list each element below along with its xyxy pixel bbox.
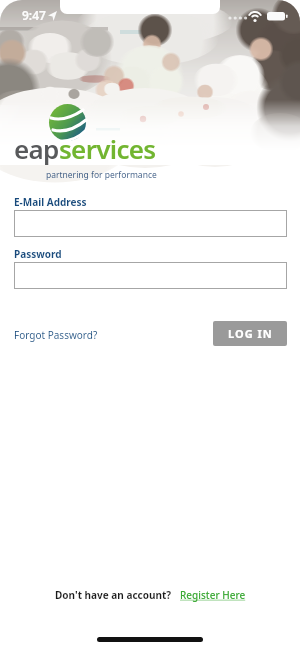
button[interactable]: Forgot Password? bbox=[14, 328, 98, 342]
staticText: partnering for performance bbox=[46, 169, 157, 181]
button[interactable] bbox=[14, 262, 287, 289]
staticText: Password bbox=[14, 247, 62, 261]
staticText: eap bbox=[14, 131, 59, 166]
staticText: services bbox=[59, 131, 156, 166]
button[interactable]: Register Here bbox=[180, 588, 246, 602]
staticText: 9:47 bbox=[22, 7, 46, 23]
staticText: E-Mail Address bbox=[14, 195, 87, 209]
staticText: LOG IN bbox=[228, 326, 273, 341]
button[interactable] bbox=[14, 210, 287, 237]
staticText: Don't have an account? bbox=[55, 588, 172, 602]
button[interactable]: LOG IN bbox=[213, 321, 287, 346]
